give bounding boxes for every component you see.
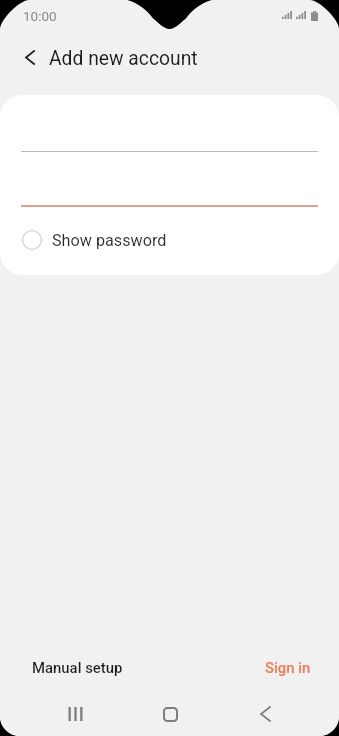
staticText: Sign in xyxy=(265,659,311,676)
button[interactable]: Home xyxy=(144,698,197,730)
button[interactable]: Show password xyxy=(22,220,167,260)
button[interactable]: Back xyxy=(7,36,52,81)
staticText: Manual setup xyxy=(32,659,123,676)
button[interactable]: Recents xyxy=(49,698,102,730)
staticText: 10:00 xyxy=(23,8,57,24)
staticText: Show password xyxy=(52,231,167,250)
button[interactable]: Back xyxy=(239,698,292,730)
staticText: Add new account xyxy=(49,47,198,70)
button[interactable]: Sign in xyxy=(265,659,311,676)
button[interactable]: Manual setup xyxy=(32,659,123,676)
